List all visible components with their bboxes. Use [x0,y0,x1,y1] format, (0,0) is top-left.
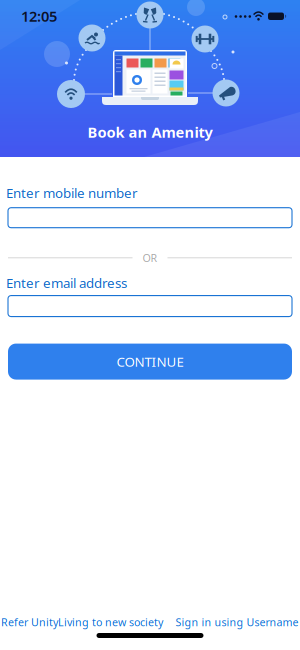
staticText: Refer UnityLiving to new society [1,615,163,629]
button[interactable]: Sign in using Username [175,615,298,629]
staticText: Enter email address [6,274,127,292]
staticText: Enter mobile number [6,184,138,202]
staticText: CONTINUE [116,353,183,370]
staticText: 12:05 [21,6,57,26]
button[interactable]: Mobile number [0,208,300,228]
button[interactable]: Refer UnityLiving to new society [1,615,163,629]
staticText: Sign in using Username [175,615,298,629]
button[interactable]: CONTINUE [0,344,300,380]
staticText: OR [142,251,157,265]
staticText: Book an Amenity [87,122,212,142]
button[interactable]: Email address [0,296,300,317]
